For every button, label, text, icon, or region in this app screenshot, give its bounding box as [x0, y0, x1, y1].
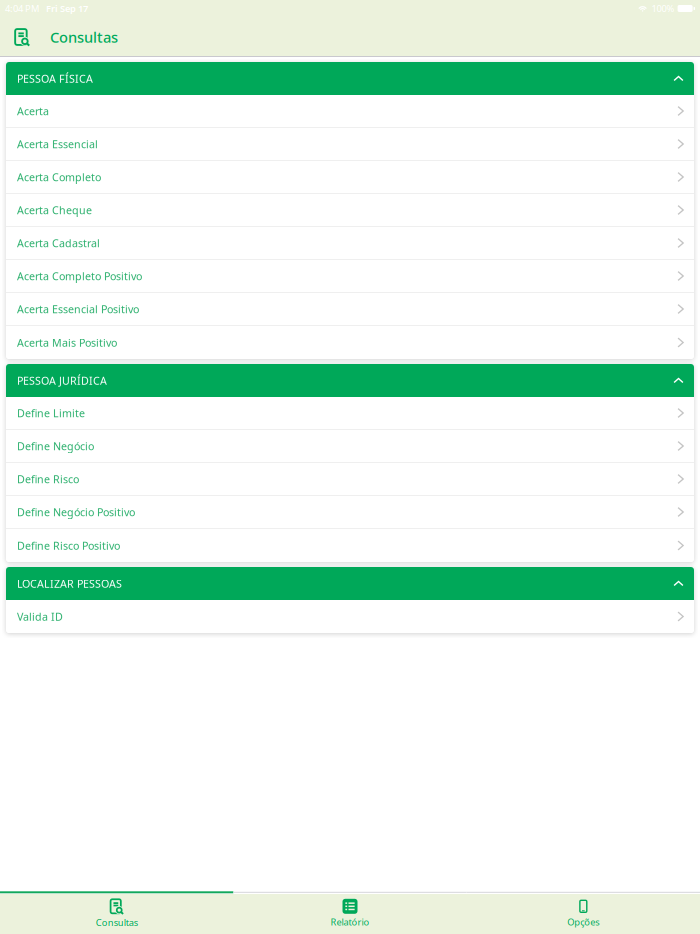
- staticText: Define Risco: [17, 472, 79, 486]
- button[interactable]: Consultas: [9, 20, 35, 54]
- staticText: Define Limite: [17, 406, 85, 420]
- button[interactable]: Define Risco: [6, 463, 694, 496]
- staticText: Acerta Completo Positivo: [17, 269, 142, 283]
- button[interactable]: Consultas: [0, 894, 233, 934]
- button[interactable]: Acerta: [6, 95, 694, 128]
- button[interactable]: Opções: [467, 894, 700, 934]
- button[interactable]: Define Negócio: [6, 430, 694, 463]
- staticText: Consultas: [50, 27, 118, 47]
- staticText: 100%: [652, 2, 675, 15]
- staticText: PESSOA JURÍDICA: [17, 373, 107, 388]
- staticText: Acerta Essencial Positivo: [17, 302, 139, 316]
- staticText: Acerta Cadastral: [17, 236, 100, 250]
- button[interactable]: Acerta Completo Positivo: [6, 260, 694, 293]
- button[interactable]: Define Risco Positivo: [6, 529, 694, 562]
- button[interactable]: Valida ID: [6, 600, 694, 633]
- button[interactable]: Acerta Mais Positivo: [6, 326, 694, 359]
- button[interactable]: Define Limite: [6, 397, 694, 430]
- button[interactable]: Acerta Essencial Positivo: [6, 293, 694, 326]
- button[interactable]: Acerta Completo: [6, 161, 694, 194]
- staticText: 4:04 PM: [5, 2, 39, 15]
- staticText: PESSOA FÍSICA: [17, 71, 93, 86]
- staticText: Fri Sep 17: [46, 2, 88, 15]
- button[interactable]: Acerta Cadastral: [6, 227, 694, 260]
- button[interactable]: Relatório: [233, 894, 467, 934]
- staticText: Acerta Cheque: [17, 203, 92, 217]
- button[interactable]: PESSOA FÍSICA: [6, 62, 694, 95]
- staticText: Consultas: [96, 916, 138, 929]
- staticText: Acerta Essencial: [17, 137, 98, 151]
- staticText: Define Risco Positivo: [17, 538, 120, 553]
- staticText: LOCALIZAR PESSOAS: [17, 576, 122, 591]
- staticText: Define Negócio Positivo: [17, 505, 135, 519]
- button[interactable]: Acerta Essencial: [6, 128, 694, 161]
- staticText: Relatório: [330, 916, 369, 928]
- staticText: Define Negócio: [17, 439, 94, 453]
- button[interactable]: LOCALIZAR PESSOAS: [6, 567, 694, 600]
- staticText: Acerta Mais Positivo: [17, 335, 117, 350]
- staticText: Acerta: [17, 104, 49, 118]
- button[interactable]: Acerta Cheque: [6, 194, 694, 227]
- button[interactable]: Define Negócio Positivo: [6, 496, 694, 529]
- button[interactable]: PESSOA JURÍDICA: [6, 364, 694, 397]
- staticText: Acerta Completo: [17, 170, 101, 184]
- staticText: Opções: [567, 916, 599, 928]
- staticText: Valida ID: [17, 609, 63, 624]
